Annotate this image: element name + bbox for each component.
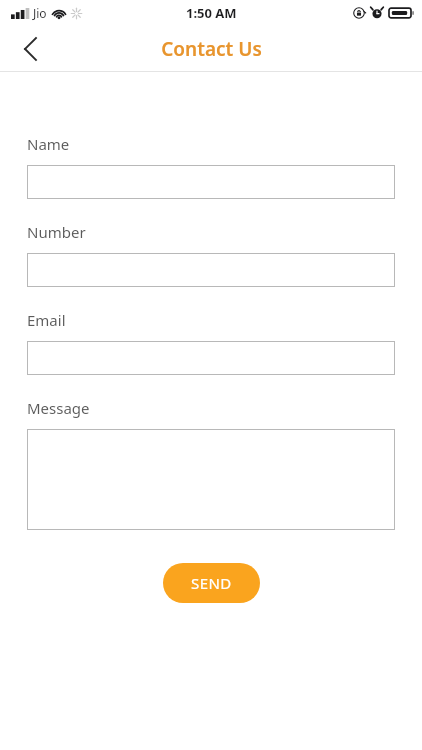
staticText: SEND — [191, 573, 232, 593]
button[interactable]: SEND — [163, 563, 260, 603]
button[interactable]: Name input — [27, 165, 395, 199]
staticText: Number — [27, 222, 86, 242]
button[interactable]: Number input — [27, 253, 395, 287]
staticText: Contact Us — [161, 36, 262, 62]
staticText: 1:50 AM — [186, 4, 237, 22]
staticText: Email — [27, 310, 66, 330]
button[interactable]: Message input — [27, 429, 395, 530]
staticText: Name — [27, 134, 70, 154]
staticText: Message — [27, 398, 90, 418]
button[interactable]: Back — [8, 27, 52, 71]
button[interactable]: Email input — [27, 341, 395, 375]
staticText: Jio — [33, 5, 47, 21]
